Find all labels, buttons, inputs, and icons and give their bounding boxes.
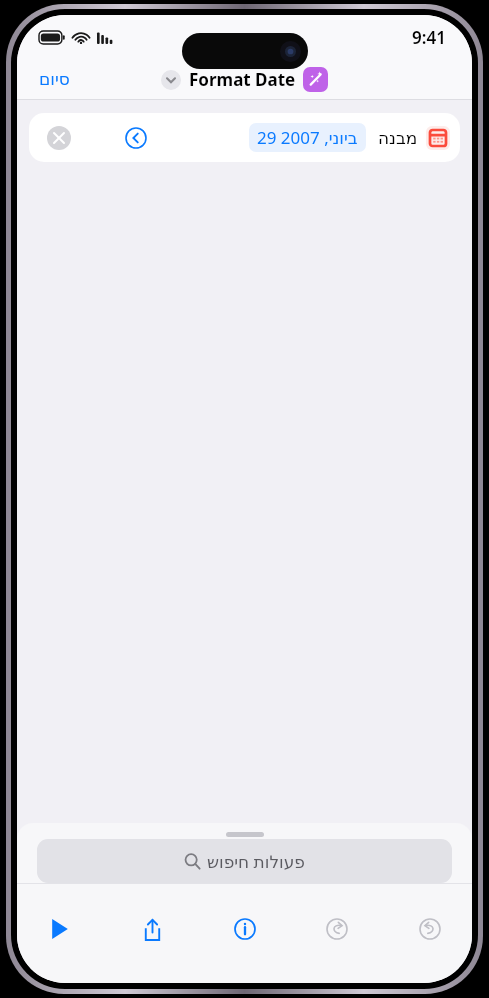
staticText: סיום: [39, 69, 70, 89]
button[interactable]: Redo: [406, 905, 454, 953]
button[interactable]: Share: [128, 905, 176, 953]
staticText: פעולות חיפוש: [207, 850, 305, 873]
button[interactable]: סיום: [31, 65, 78, 93]
staticText: מבנה: [378, 128, 418, 148]
staticText: Format Date: [189, 68, 296, 91]
button[interactable]: Previous: [125, 127, 147, 149]
button[interactable]: פעולות חיפוש: [37, 839, 452, 883]
button[interactable]: Info: [221, 905, 269, 953]
button[interactable]: Remove: [47, 126, 71, 150]
staticText: 9:41: [412, 26, 446, 49]
other: Calendar: [426, 126, 450, 150]
button[interactable]: 29 ביוני, 2007: [249, 123, 366, 152]
button[interactable]: Format Date: [157, 65, 332, 94]
staticText: 29 ביוני, 2007: [257, 126, 358, 149]
button[interactable]: Calendar: [29, 113, 460, 162]
button[interactable]: Undo: [313, 905, 361, 953]
button[interactable]: Run: [35, 905, 83, 953]
